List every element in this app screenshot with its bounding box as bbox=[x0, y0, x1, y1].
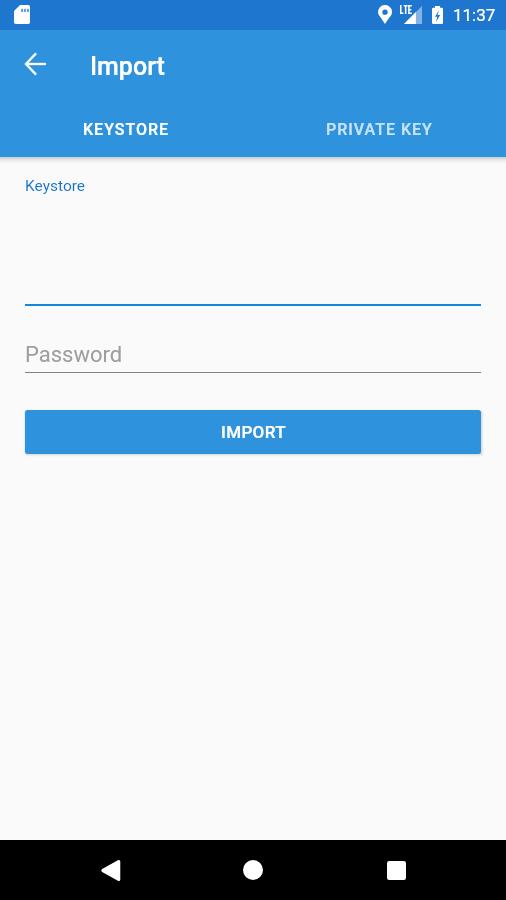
button[interactable]: IMPORT bbox=[25, 410, 481, 454]
button[interactable]: Home bbox=[229, 846, 277, 894]
staticText: Keystore bbox=[25, 177, 86, 195]
staticText: KEYSTORE bbox=[83, 120, 170, 139]
staticText: Password bbox=[25, 342, 123, 368]
button[interactable]: Back bbox=[10, 40, 58, 88]
staticText: PRIVATE KEY bbox=[326, 120, 433, 139]
button[interactable]: Back bbox=[86, 846, 134, 894]
staticText: 11:37 bbox=[453, 5, 496, 25]
button[interactable]: PRIVATE KEY bbox=[253, 101, 506, 157]
button[interactable]: KEYSTORE bbox=[0, 101, 253, 157]
button[interactable]: Recent apps bbox=[372, 846, 420, 894]
staticText: Import bbox=[90, 52, 165, 81]
staticText: IMPORT bbox=[221, 422, 286, 442]
